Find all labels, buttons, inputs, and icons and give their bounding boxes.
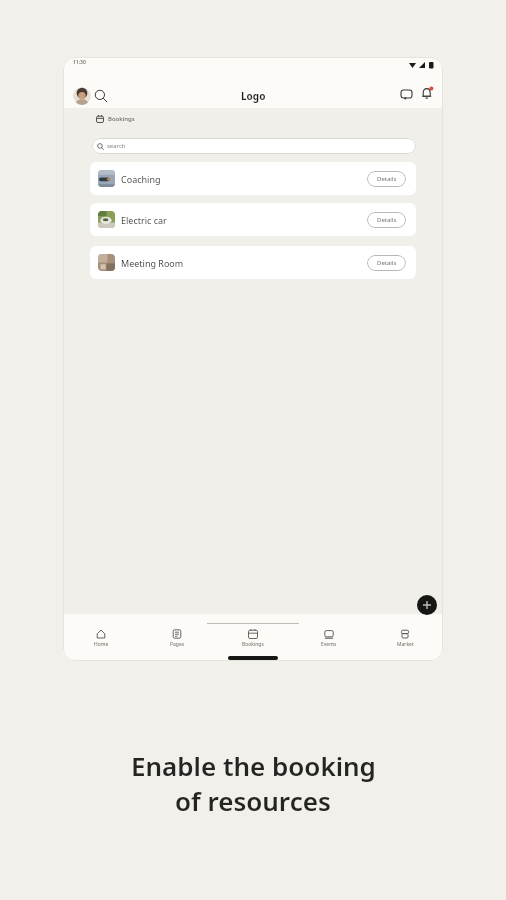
button[interactable]: Market (367, 617, 443, 650)
staticText: Bookings (108, 115, 135, 123)
button[interactable]: Bookings (96, 115, 135, 123)
staticText: Market (397, 641, 414, 648)
staticText: Coaching (121, 173, 161, 185)
staticText: Electric car (121, 214, 167, 226)
staticText: search (107, 142, 126, 150)
button[interactable]: search (92, 138, 416, 154)
button[interactable]: Meeting Room (90, 246, 416, 279)
button[interactable]: Coaching (90, 162, 416, 195)
staticText: Home (94, 641, 109, 648)
staticText: Details (377, 175, 397, 183)
staticText: Pages (170, 641, 185, 648)
button[interactable] (94, 89, 108, 103)
button[interactable]: Details (367, 171, 406, 187)
staticText: Bookings (242, 641, 264, 648)
button[interactable]: Events (291, 617, 367, 650)
button[interactable]: Pages (139, 617, 215, 650)
staticText: Enable the booking (131, 748, 376, 783)
button[interactable] (73, 87, 91, 105)
button[interactable]: Home (63, 617, 139, 650)
staticText: Events (321, 641, 337, 648)
staticText: Meeting Room (121, 257, 184, 269)
button[interactable]: Details (367, 212, 406, 228)
button[interactable]: Details (367, 255, 406, 271)
button[interactable]: Electric car (90, 203, 416, 236)
button[interactable] (400, 88, 413, 101)
staticText: 11:30 (73, 59, 86, 66)
button[interactable] (417, 595, 437, 615)
button[interactable]: Bookings (215, 617, 291, 650)
button[interactable] (420, 86, 435, 101)
staticText: Logo (241, 89, 266, 103)
staticText: Details (377, 216, 397, 224)
staticText: Details (377, 259, 397, 267)
staticText: of resources (175, 783, 331, 818)
